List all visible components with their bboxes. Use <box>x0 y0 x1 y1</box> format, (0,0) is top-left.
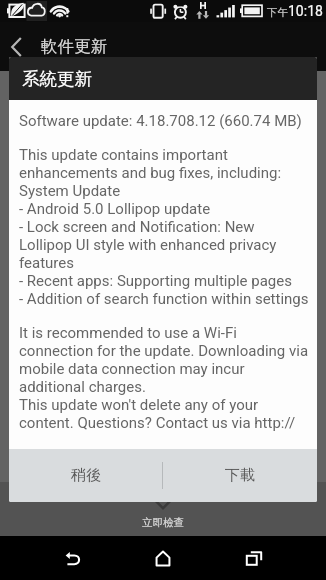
staticText: It is recommended to use a Wi-Fi connect… <box>19 324 310 432</box>
button[interactable]: Back <box>37 536 109 580</box>
staticText: 10:18 <box>288 3 323 19</box>
staticText: This update contains important enhanceme… <box>19 146 310 308</box>
staticText: 下載 <box>225 466 255 485</box>
button[interactable]: Back <box>0 22 34 71</box>
button[interactable]: 立即檢查 <box>0 502 326 529</box>
staticText: 軟件更新 <box>41 36 107 57</box>
staticText: Software update: 4.18.708.12 (660.74 MB) <box>19 112 302 130</box>
staticText: 稍後 <box>71 466 101 485</box>
staticText: 系統更新 <box>22 68 92 90</box>
staticText: 立即檢查 <box>142 516 184 529</box>
button[interactable]: 稍後 <box>9 449 162 502</box>
button[interactable]: 下載 <box>163 449 317 502</box>
button[interactable]: Home <box>127 536 199 580</box>
staticText: 下午 <box>267 6 288 19</box>
button[interactable]: Recent apps <box>218 536 290 580</box>
